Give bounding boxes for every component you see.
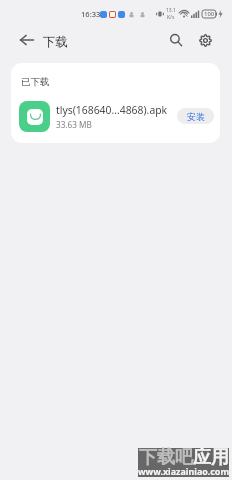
staticText: 13.1 [166, 7, 176, 14]
staticText: 16:33 [81, 9, 101, 19]
button[interactable]: tlys(168640…4868).apk [11, 95, 220, 137]
staticText: 已下载 [21, 76, 50, 88]
button[interactable]: 安装 [177, 108, 214, 124]
button[interactable]: Settings [192, 27, 218, 53]
staticText: 33.63 MB [56, 119, 92, 130]
staticText: K/s [167, 14, 175, 21]
staticText: 下载 [43, 34, 68, 50]
button[interactable]: Back [14, 27, 40, 53]
staticText: www.xiazainiao.com [138, 465, 229, 477]
staticText: 100 [204, 10, 215, 18]
staticText: 下载吧 [139, 446, 193, 469]
staticText: tlys(168640…4868).apk [56, 103, 168, 117]
staticText: 安装 [187, 111, 205, 122]
button[interactable]: Search [163, 27, 189, 53]
staticText: 应用 [193, 446, 229, 469]
